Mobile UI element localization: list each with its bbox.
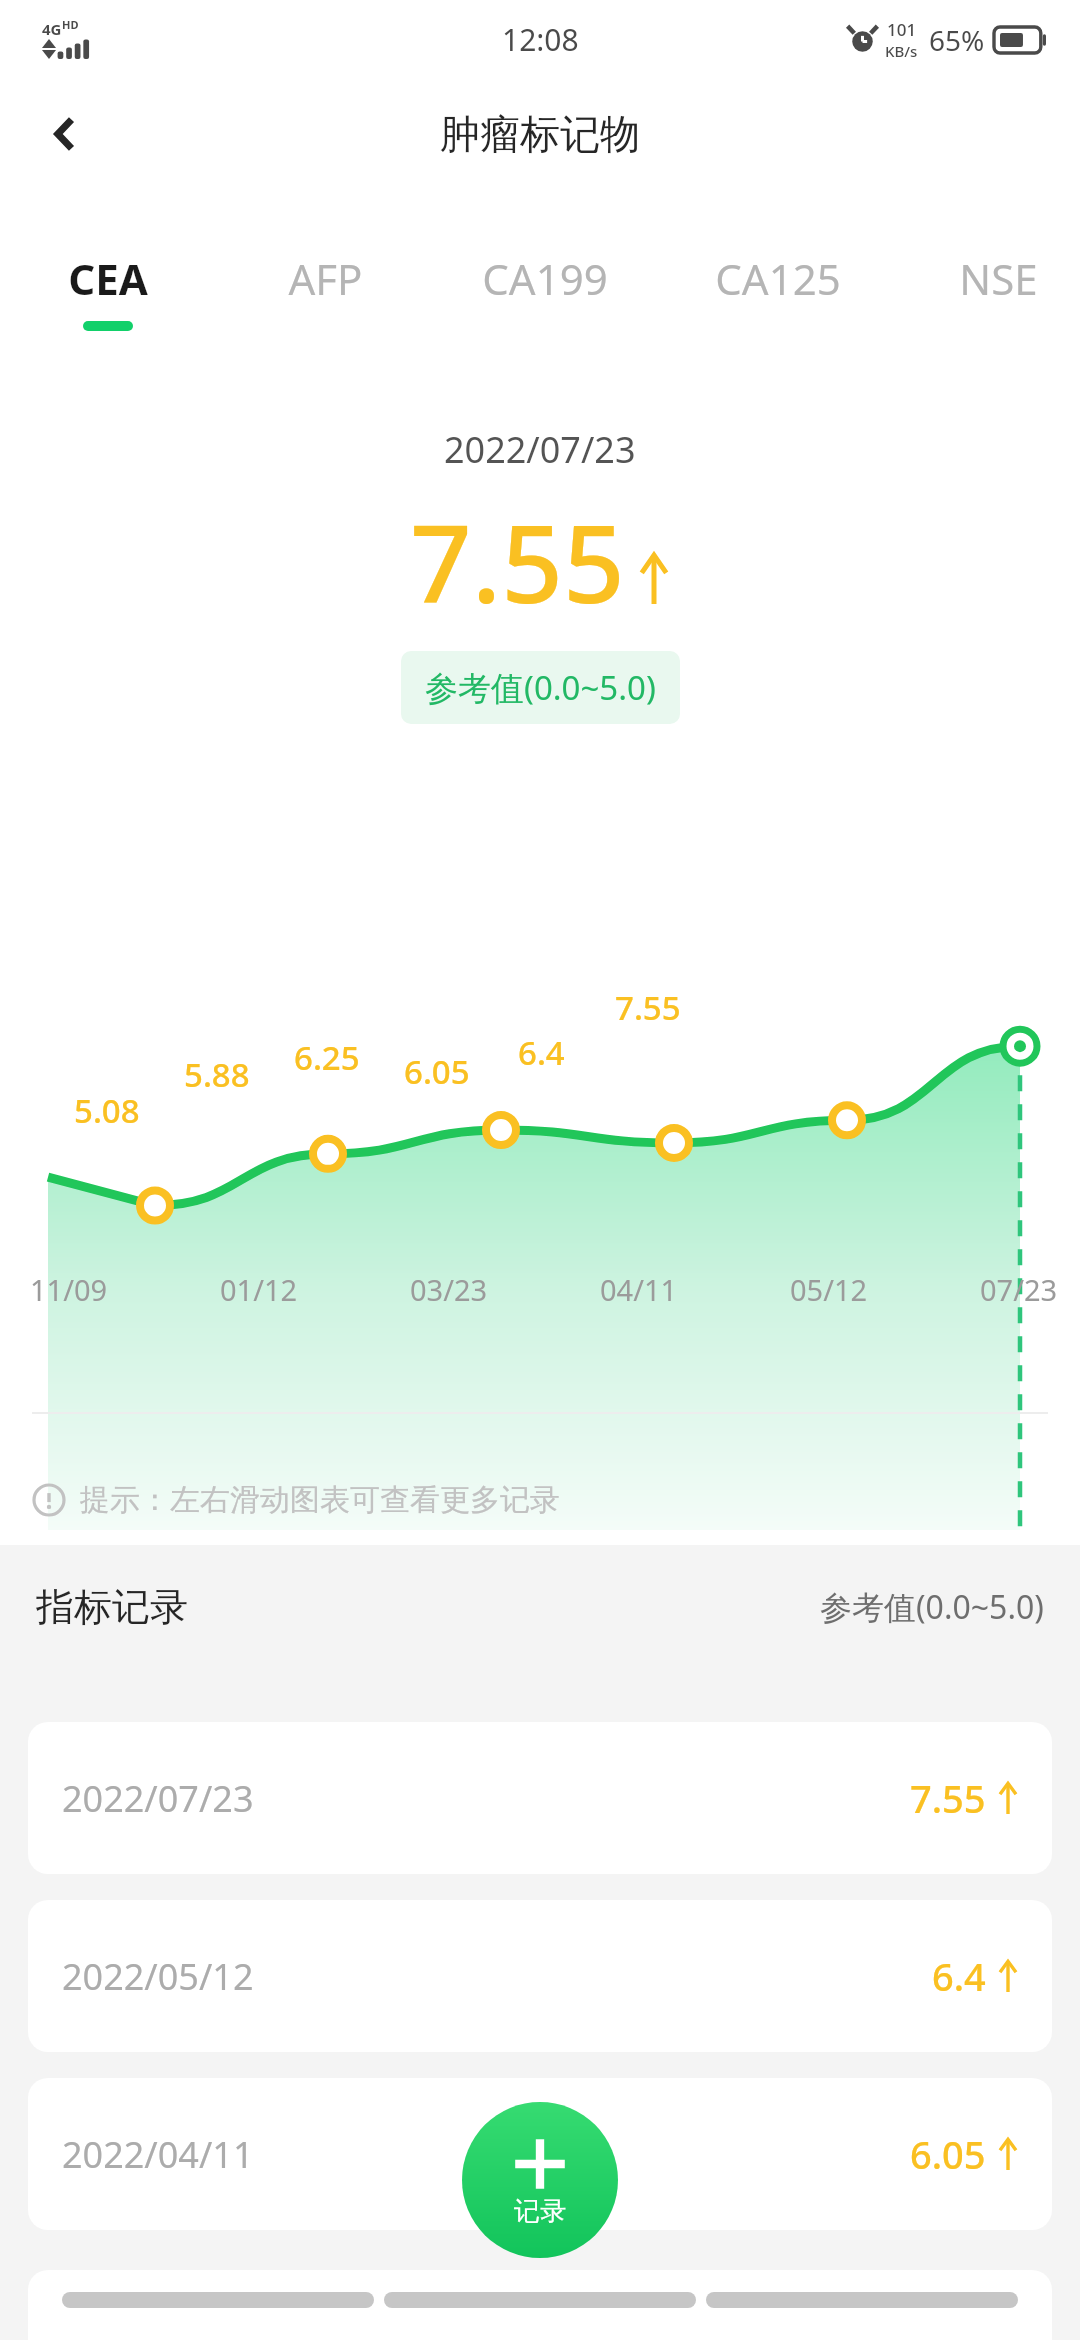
staticText: 5.08	[74, 1088, 140, 1133]
staticText: CA125	[715, 250, 841, 307]
button[interactable]	[28, 2270, 1052, 2340]
staticText: CEA	[68, 250, 148, 307]
staticText: 2022/07/23	[444, 425, 636, 474]
button[interactable]: CA125	[678, 250, 878, 390]
staticText: 2022/04/11	[62, 2130, 254, 2179]
staticText: AFP	[288, 250, 363, 307]
button[interactable]: 2022/05/12	[28, 1900, 1052, 2052]
staticText: 7.55	[910, 1772, 986, 1824]
staticText: 指标记录	[36, 1583, 188, 1631]
button[interactable]: NSE	[898, 250, 1080, 390]
staticText: 6.25	[294, 1035, 360, 1080]
button[interactable]: 返回	[20, 89, 110, 179]
staticText: 4G	[42, 19, 62, 39]
button[interactable]: AFP	[225, 250, 425, 390]
staticText: 参考值(0.0~5.0)	[425, 665, 656, 710]
staticText: 7.55	[615, 985, 681, 1030]
staticText: 101	[887, 18, 917, 41]
button[interactable]: 2022/04/11	[28, 2078, 1052, 2230]
staticText: NSE	[959, 250, 1038, 307]
staticText: KB/s	[885, 41, 918, 61]
staticText: 05/12	[790, 1270, 868, 1309]
staticText: 提示：左右滑动图表可查看更多记录	[80, 1481, 560, 1519]
staticText: 参考值(0.0~5.0)	[820, 1585, 1044, 1629]
staticText: 6.4	[518, 1030, 565, 1075]
staticText: 7.55	[410, 488, 625, 635]
staticText: 2022/07/23	[62, 1774, 254, 1823]
staticText: 01/12	[220, 1270, 298, 1309]
staticText: 5.88	[184, 1052, 250, 1097]
staticText: 04/11	[600, 1270, 678, 1309]
button[interactable]: 2022/07/23	[28, 1722, 1052, 1874]
staticText: 2022/05/12	[62, 1952, 254, 2001]
staticText: 07/23	[980, 1270, 1058, 1309]
staticText: CA199	[482, 250, 608, 307]
staticText: 65%	[929, 21, 985, 59]
staticText: 11/09	[30, 1270, 108, 1309]
button[interactable]: CEA	[8, 250, 208, 390]
button[interactable]: CA199	[445, 250, 645, 390]
staticText: 6.4	[932, 1950, 986, 2002]
staticText: HD	[62, 17, 79, 32]
staticText: 肿瘤标记物	[440, 109, 640, 159]
staticText: 记录	[514, 2195, 566, 2228]
staticText: 6.05	[910, 2128, 986, 2180]
staticText: 6.05	[404, 1049, 470, 1094]
staticText: 03/23	[410, 1270, 488, 1309]
staticText: 12:08	[502, 19, 579, 60]
button[interactable]: 添加记录	[462, 2102, 618, 2258]
